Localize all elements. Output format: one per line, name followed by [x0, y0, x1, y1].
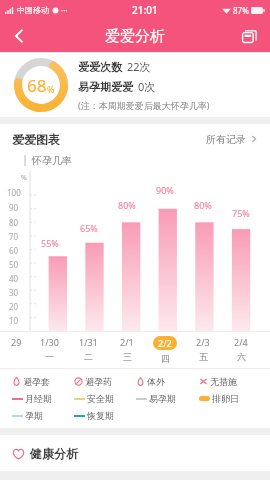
staticText: 安全期 — [87, 393, 114, 404]
button[interactable]: 体外 — [136, 376, 199, 387]
staticText: ··· — [61, 5, 68, 16]
button[interactable]: 健康分析 — [12, 435, 258, 471]
staticText: 健康分析 — [30, 446, 78, 461]
staticText: % — [21, 173, 27, 183]
staticText: 100 — [7, 187, 21, 198]
staticText: 中国移动 — [17, 5, 49, 15]
staticText: 70 — [9, 231, 19, 242]
staticText: (注：本周期爱爱后最大怀孕几率) — [78, 99, 210, 111]
staticText: 90 — [9, 202, 19, 213]
staticText: 90% — [156, 184, 174, 196]
button[interactable]: 避孕套 — [12, 376, 74, 387]
staticText: 爱爱图表 — [12, 132, 60, 147]
staticText: 68 — [27, 74, 47, 97]
staticText: 体外 — [147, 376, 165, 387]
staticText: 30 — [9, 287, 19, 298]
button[interactable]: Back — [5, 22, 33, 50]
staticText: 2/2 — [158, 337, 172, 349]
staticText: 三 — [123, 351, 132, 362]
staticText: 22次 — [127, 59, 151, 74]
staticText: 易孕期 — [149, 393, 176, 404]
staticText: 所有记录 — [206, 133, 246, 146]
button[interactable]: 易孕期 — [136, 393, 199, 404]
staticText: 爱爱次数 — [78, 60, 122, 74]
staticText: 避孕套 — [23, 376, 50, 387]
staticText: 怀孕几率 — [32, 154, 72, 167]
staticText: 87% — [233, 5, 249, 16]
button[interactable]: 无措施 — [199, 376, 262, 387]
staticText: 21:01 — [132, 3, 158, 17]
staticText: 孕期 — [25, 410, 43, 421]
staticText: 二 — [84, 351, 93, 362]
staticText: 五 — [199, 351, 208, 362]
staticText: 80% — [194, 199, 212, 211]
staticText: 1/30 — [40, 336, 59, 348]
staticText: 2/3 — [196, 336, 210, 348]
staticText: 60 — [9, 245, 19, 256]
staticText: 75% — [232, 207, 250, 219]
staticText: 40 — [9, 273, 19, 284]
staticText: 80 — [9, 217, 19, 228]
staticText: 四 — [161, 353, 170, 364]
button[interactable]: Records — [236, 23, 262, 49]
staticText: 80% — [118, 199, 136, 211]
staticText: 2/4 — [234, 336, 248, 348]
button[interactable]: 安全期 — [74, 393, 136, 404]
staticText: 20 — [9, 301, 19, 312]
staticText: 无措施 — [210, 376, 237, 387]
staticText: 排卵日 — [212, 393, 239, 404]
staticText: % — [47, 83, 55, 95]
staticText: 六 — [237, 351, 246, 362]
button[interactable]: 恢复期 — [74, 410, 137, 421]
staticText: 避孕药 — [85, 376, 112, 387]
staticText: 2/1 — [120, 336, 134, 348]
staticText: 易孕期爱爱 — [78, 80, 133, 94]
staticText: 月经期 — [25, 393, 52, 404]
staticText: 55% — [41, 237, 59, 249]
staticText: 0次 — [138, 79, 156, 94]
button[interactable]: 月经期 — [12, 393, 74, 404]
button[interactable]: 避孕药 — [74, 376, 136, 387]
button[interactable]: 2/2 — [158, 337, 172, 349]
staticText: 65% — [80, 222, 98, 234]
button[interactable]: 孕期 — [12, 410, 74, 421]
staticText: 29 — [11, 336, 22, 348]
button[interactable]: 排卵日 — [199, 393, 262, 404]
staticText: 50 — [9, 259, 19, 270]
staticText: 恢复期 — [87, 410, 114, 421]
button[interactable]: 爱爱图表 — [12, 124, 258, 154]
staticText: 一 — [45, 351, 54, 362]
staticText: 爱爱分析 — [105, 27, 165, 46]
staticText: 10 — [9, 315, 19, 326]
staticText: 1/31 — [79, 336, 98, 348]
